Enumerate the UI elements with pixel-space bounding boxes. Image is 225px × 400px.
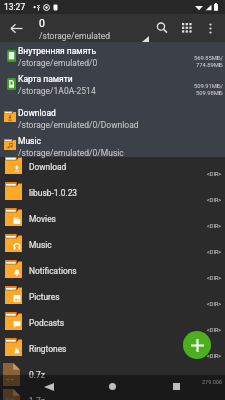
button[interactable]: 1.7z	[0, 386, 225, 400]
button[interactable]: More options	[199, 17, 221, 39]
button[interactable]: Search	[149, 15, 175, 41]
staticText: Movies	[29, 214, 56, 224]
button[interactable]: View mode	[175, 16, 199, 40]
staticText: /storage/emulated/0/Download	[18, 120, 139, 130]
staticText: 1.7z	[29, 396, 45, 400]
staticText: 774.89МБ	[196, 62, 223, 69]
button[interactable]: Download	[0, 152, 225, 178]
staticText: 569.85МБ/	[194, 55, 223, 62]
staticText: Карта памяти	[18, 74, 73, 84]
button[interactable]: Download	[0, 104, 225, 132]
staticText: <DIR>	[207, 223, 222, 229]
staticText: 0.7z	[29, 370, 45, 380]
staticText: <DIR>	[207, 327, 222, 333]
staticText: /storage/emulated/0	[18, 58, 98, 68]
button[interactable]: 0.7z	[0, 360, 225, 386]
button[interactable]: Add	[183, 331, 211, 359]
staticText: Music	[29, 240, 52, 250]
button[interactable]: Back	[29, 375, 69, 400]
button[interactable]: Pictures	[0, 282, 225, 308]
staticText: 13:27	[4, 2, 26, 12]
staticText: <DIR>	[207, 353, 222, 359]
staticText: /storage/emulated/0/Music	[18, 148, 124, 158]
staticText: <DIR>	[207, 249, 222, 255]
staticText: <DIR>	[207, 197, 222, 203]
button[interactable]: Music	[0, 230, 225, 256]
staticText: libusb-1.0.23	[29, 188, 78, 198]
staticText: Внутренняя память	[18, 46, 97, 56]
staticText: Pictures	[29, 292, 60, 302]
button[interactable]: Recents	[156, 375, 196, 400]
button[interactable]: Ringtones	[0, 334, 225, 360]
staticText: Download	[29, 162, 67, 172]
button[interactable]: Back	[0, 14, 32, 42]
button[interactable]: Music	[0, 132, 225, 160]
staticText: <DIR>	[207, 275, 222, 281]
staticText: Notifications	[29, 266, 77, 276]
button[interactable]: Внутренняя память	[0, 42, 225, 70]
button[interactable]: Movies	[0, 204, 225, 230]
staticText: 509.98МБ	[196, 90, 223, 97]
staticText: Ringtones	[29, 344, 67, 354]
staticText: /storage/1A0A-2514	[18, 86, 96, 96]
staticText: /storage/emulated	[39, 31, 110, 41]
button[interactable]: Podcasts	[0, 308, 225, 334]
button[interactable]: Home	[92, 375, 132, 400]
button[interactable]: Карта памяти	[0, 70, 225, 98]
staticText: <DIR>	[207, 171, 222, 177]
staticText: Download	[18, 108, 56, 118]
staticText: 509.91МБ/	[194, 83, 223, 90]
staticText: 279.00б	[202, 379, 222, 385]
staticText: Podcasts	[29, 318, 65, 328]
staticText: <DIR>	[207, 301, 222, 307]
staticText: Music	[18, 136, 42, 146]
button[interactable]: Notifications	[0, 256, 225, 282]
staticText: 0	[39, 17, 45, 29]
button[interactable]: libusb-1.0.23	[0, 178, 225, 204]
